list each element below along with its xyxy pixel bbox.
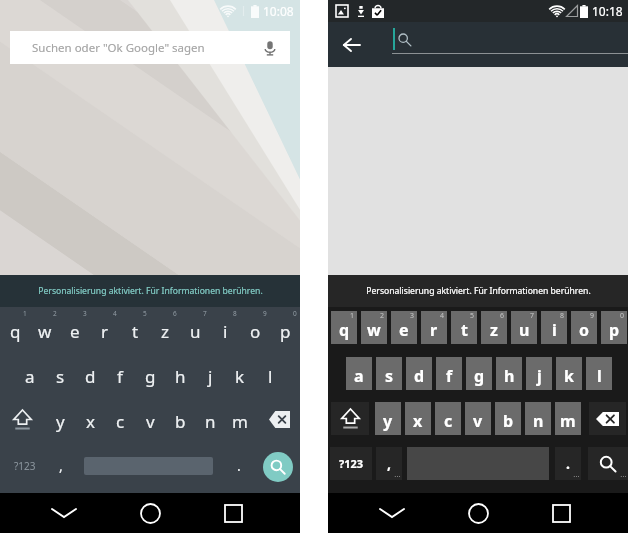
button[interactable]: 4 bbox=[421, 311, 447, 344]
staticText: 8 bbox=[233, 309, 237, 318]
button[interactable]: b bbox=[495, 402, 521, 435]
staticText: 6 bbox=[173, 309, 177, 318]
button[interactable]: b bbox=[165, 397, 195, 442]
staticText: b bbox=[175, 410, 186, 433]
button[interactable]: 5 bbox=[120, 307, 150, 352]
button[interactable]: Suchen oder "Ok Google" sagen bbox=[10, 31, 290, 64]
button[interactable]: n bbox=[195, 397, 225, 442]
button[interactable]: 2 bbox=[30, 307, 60, 352]
button[interactable]: f bbox=[436, 357, 462, 390]
button[interactable]: ?123 bbox=[0, 443, 50, 488]
button[interactable]: m bbox=[225, 397, 255, 442]
button[interactable]: h bbox=[496, 357, 522, 390]
button[interactable]: x bbox=[405, 402, 431, 435]
button[interactable]: x bbox=[75, 397, 105, 442]
button[interactable]: , bbox=[376, 447, 402, 480]
staticText: ?123 bbox=[339, 456, 364, 471]
button[interactable]: g bbox=[466, 357, 492, 390]
button[interactable]: g bbox=[135, 352, 165, 397]
button[interactable]: 4 bbox=[90, 307, 120, 352]
button[interactable]: Recents bbox=[213, 493, 253, 533]
staticText: 9 bbox=[263, 309, 267, 318]
button[interactable]: 5 bbox=[451, 311, 477, 344]
button[interactable]: c bbox=[105, 397, 135, 442]
staticText: k bbox=[564, 365, 574, 387]
button[interactable]: n bbox=[525, 402, 551, 435]
button[interactable]: s bbox=[376, 357, 402, 390]
button[interactable]: 9 bbox=[571, 311, 597, 344]
button[interactable]: s bbox=[45, 352, 75, 397]
button[interactable]: d bbox=[75, 352, 105, 397]
button[interactable]: y bbox=[45, 397, 75, 442]
button[interactable]: 8 bbox=[210, 307, 240, 352]
staticText: f bbox=[117, 365, 123, 388]
staticText: y bbox=[383, 410, 393, 432]
button[interactable]: k bbox=[556, 357, 582, 390]
staticText: d bbox=[414, 365, 425, 387]
button[interactable]: h bbox=[165, 352, 195, 397]
button[interactable]: j bbox=[195, 352, 225, 397]
button[interactable]: 0 bbox=[270, 307, 300, 352]
button[interactable]: 9 bbox=[240, 307, 270, 352]
button[interactable]: Home bbox=[458, 493, 498, 533]
staticText: 10:08 bbox=[263, 3, 294, 19]
button[interactable]: Back bbox=[331, 25, 371, 65]
staticText: t bbox=[132, 320, 139, 343]
button[interactable]: v bbox=[465, 402, 491, 435]
button[interactable]: Search field bbox=[392, 22, 628, 67]
button[interactable]: a bbox=[15, 352, 45, 397]
button[interactable]: l bbox=[255, 352, 285, 397]
staticText: a bbox=[354, 365, 364, 387]
button[interactable]: Search bbox=[588, 447, 628, 480]
staticText: h bbox=[175, 365, 186, 388]
button[interactable]: Shift bbox=[331, 402, 369, 435]
staticText: g bbox=[145, 365, 156, 388]
button[interactable]: 2 bbox=[361, 311, 387, 344]
staticText: k bbox=[235, 365, 245, 388]
button[interactable]: Back bbox=[372, 493, 412, 533]
button[interactable]: l bbox=[586, 357, 612, 390]
staticText: 1 bbox=[350, 311, 355, 321]
button[interactable]: v bbox=[135, 397, 165, 442]
button[interactable]: Shift bbox=[0, 397, 45, 442]
button[interactable]: 3 bbox=[60, 307, 90, 352]
button[interactable]: Recents bbox=[541, 493, 581, 533]
button[interactable]: d bbox=[406, 357, 432, 390]
staticText: v bbox=[146, 410, 155, 433]
button[interactable]: y bbox=[375, 402, 401, 435]
button[interactable]: 1 bbox=[331, 311, 357, 344]
staticText: n bbox=[533, 410, 544, 432]
staticText: n bbox=[205, 410, 216, 433]
button[interactable]: m bbox=[555, 402, 581, 435]
button[interactable]: 6 bbox=[150, 307, 180, 352]
staticText: g bbox=[474, 365, 485, 387]
button[interactable]: , bbox=[48, 443, 74, 488]
button[interactable]: 7 bbox=[180, 307, 210, 352]
button[interactable]: 6 bbox=[481, 311, 507, 344]
staticText: d bbox=[85, 365, 96, 388]
button[interactable]: 3 bbox=[391, 311, 417, 344]
button[interactable]: Backspace bbox=[589, 402, 626, 435]
button[interactable]: 8 bbox=[541, 311, 567, 344]
button[interactable]: Backspace bbox=[257, 397, 300, 442]
button[interactable]: a bbox=[346, 357, 372, 390]
button[interactable]: Personalisierung aktiviert. Für Informat… bbox=[328, 275, 628, 307]
button[interactable]: 0 bbox=[601, 311, 627, 344]
button[interactable]: Search bbox=[263, 452, 293, 482]
button[interactable]: f bbox=[105, 352, 135, 397]
button[interactable]: 7 bbox=[511, 311, 537, 344]
button[interactable]: 1 bbox=[0, 307, 30, 352]
staticText: ⋯ bbox=[620, 472, 626, 479]
button[interactable]: Personalisierung aktiviert. Für Informat… bbox=[0, 275, 300, 307]
button[interactable]: Home bbox=[130, 493, 170, 533]
button[interactable]: . bbox=[555, 447, 581, 480]
button[interactable]: j bbox=[526, 357, 552, 390]
button[interactable]: . bbox=[226, 443, 252, 488]
button[interactable]: c bbox=[435, 402, 461, 435]
button[interactable]: ?123 bbox=[330, 447, 372, 480]
button[interactable]: k bbox=[225, 352, 255, 397]
staticText: m bbox=[232, 410, 248, 433]
button[interactable]: Back bbox=[44, 493, 84, 533]
